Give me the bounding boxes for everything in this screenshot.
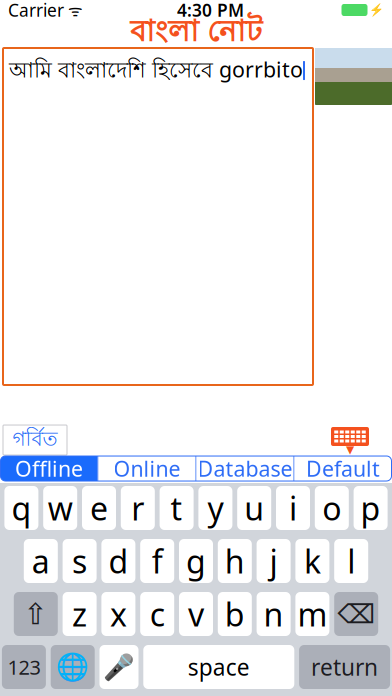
staticText: e: [90, 487, 108, 529]
staticText: ⚡: [369, 3, 384, 17]
staticText: m: [297, 593, 327, 635]
staticText: Online: [113, 454, 180, 483]
staticText: z: [72, 593, 87, 635]
staticText: গর্বিত: [12, 426, 57, 454]
staticText: r: [131, 487, 144, 529]
button[interactable]: i: [276, 486, 310, 530]
button[interactable]: space: [143, 645, 294, 689]
staticText: 4:30 PM: [177, 0, 244, 21]
button[interactable]: Online: [98, 456, 195, 481]
staticText: s: [72, 540, 87, 582]
staticText: t: [171, 487, 183, 529]
button[interactable]: Default: [294, 456, 391, 481]
button[interactable]: o: [315, 486, 349, 530]
button[interactable]: j: [257, 539, 291, 583]
button[interactable]: a: [24, 539, 58, 583]
button[interactable]: b: [218, 592, 252, 636]
staticText: d: [108, 540, 128, 582]
staticText: space: [188, 652, 250, 682]
button[interactable]: d: [101, 539, 135, 583]
button[interactable]: s: [63, 539, 97, 583]
button[interactable]: v: [179, 592, 213, 636]
button[interactable]: f: [140, 539, 174, 583]
button[interactable]: Database: [196, 456, 293, 481]
button[interactable]: c: [140, 592, 174, 636]
staticText: q: [11, 487, 31, 529]
button[interactable]: p: [354, 486, 388, 530]
staticText: b: [225, 593, 245, 635]
button[interactable]: u: [237, 486, 271, 530]
button[interactable]: k: [295, 539, 329, 583]
button[interactable]: m: [295, 592, 329, 636]
staticText: n: [264, 593, 284, 635]
button[interactable]: t: [160, 486, 194, 530]
button[interactable]: ⌫: [334, 592, 378, 636]
staticText: p: [361, 487, 381, 529]
staticText: g: [186, 540, 206, 582]
staticText: o: [322, 487, 341, 529]
staticText: h: [225, 540, 245, 582]
button[interactable]: z: [63, 592, 97, 636]
button[interactable]: w: [43, 486, 77, 530]
staticText: f: [152, 540, 163, 582]
staticText: ▼: [346, 443, 354, 455]
button[interactable]: return: [299, 645, 390, 689]
staticText: বাংলা নোট: [130, 13, 262, 53]
staticText: j: [270, 540, 278, 582]
staticText: ⇧: [23, 597, 48, 631]
button[interactable]: e: [82, 486, 116, 530]
staticText: i: [289, 487, 297, 529]
staticText: Default: [306, 454, 380, 483]
button[interactable]: n: [257, 592, 291, 636]
button[interactable]: x: [101, 592, 135, 636]
button[interactable]: g: [179, 539, 213, 583]
staticText: Database: [197, 454, 292, 483]
button[interactable]: Hide keyboard: [330, 426, 370, 454]
button[interactable]: l: [334, 539, 368, 583]
staticText: ⌫: [337, 599, 375, 629]
button[interactable]: ⇧: [14, 592, 58, 636]
staticText: c: [150, 593, 165, 635]
staticText: x: [110, 593, 127, 635]
button[interactable]: 🌐: [51, 645, 95, 689]
button[interactable]: গর্বিত: [3, 425, 67, 455]
staticText: Offline: [15, 454, 83, 483]
staticText: 🌐: [56, 652, 89, 682]
staticText: a: [32, 540, 50, 582]
staticText: y: [207, 487, 223, 529]
button[interactable]: y: [198, 486, 232, 530]
staticText: ᯤ: [64, 0, 83, 21]
button[interactable]: Offline: [0, 456, 97, 481]
staticText: 123: [7, 654, 40, 680]
staticText: return: [311, 652, 378, 682]
staticText: k: [304, 540, 321, 582]
staticText: 🎤: [103, 652, 135, 681]
staticText: u: [244, 487, 264, 529]
button[interactable]: h: [218, 539, 252, 583]
staticText: Carrier: [8, 0, 64, 21]
button[interactable]: r: [121, 486, 155, 530]
button[interactable]: q: [4, 486, 38, 530]
button[interactable]: 123: [2, 645, 46, 689]
button[interactable]: Dictate: [99, 645, 138, 689]
staticText: v: [188, 593, 204, 635]
staticText: আমি বাংলাদেশি হিসেবে gorrbito: [9, 55, 303, 86]
staticText: l: [347, 540, 355, 582]
staticText: w: [48, 487, 73, 529]
